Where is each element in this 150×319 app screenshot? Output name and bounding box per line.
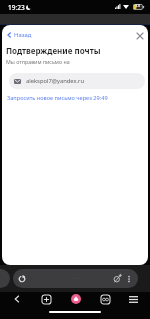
- button[interactable]: More options: [123, 273, 135, 285]
- button[interactable]: Menu: [124, 290, 142, 308]
- button[interactable]: Назад: [4, 29, 34, 41]
- button[interactable]: Back: [8, 290, 26, 308]
- button[interactable]: Close: [133, 29, 146, 42]
- staticText: 13: [135, 3, 140, 9]
- button[interactable]: Reload page: [15, 272, 28, 285]
- staticText: Подтверждение почты: [38, 21, 89, 27]
- staticText: 19:23: [8, 3, 25, 12]
- button[interactable]: New tab: [37, 290, 55, 308]
- button[interactable]: Incognito mode: [111, 272, 124, 285]
- button[interactable]: alekspol7@yandex.ru: [9, 73, 145, 89]
- staticText: Подтверждение почты: [6, 45, 101, 56]
- button[interactable]: Tabs: [96, 290, 114, 308]
- staticText: Мы отправим письмо на: [6, 58, 70, 65]
- staticText: Назад: [14, 31, 32, 39]
- staticText: alekspol7@yandex.ru: [26, 77, 85, 85]
- button[interactable]: Запросить новое письмо через 29:49: [7, 94, 108, 102]
- button[interactable]: Alice assistant: [67, 290, 85, 308]
